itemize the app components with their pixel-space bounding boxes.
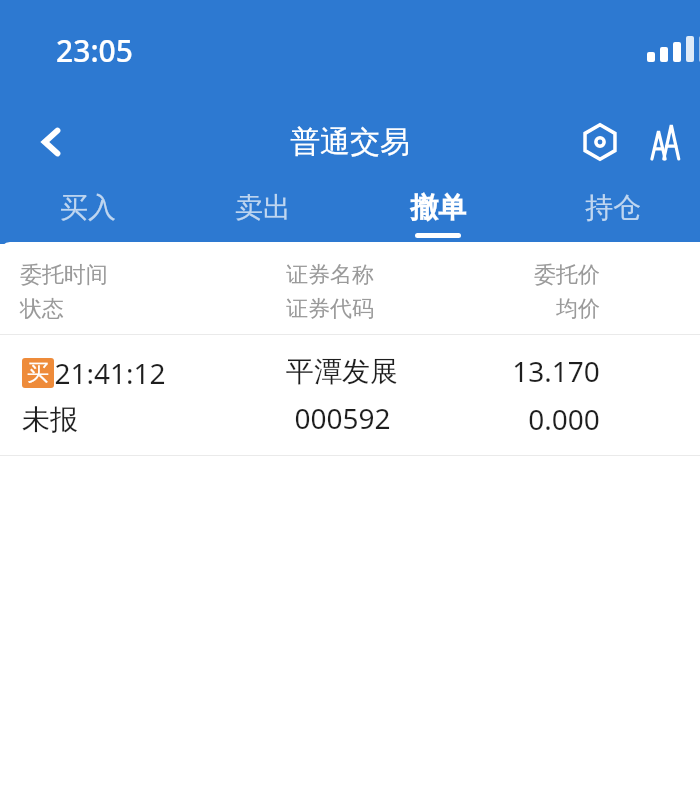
button[interactable]: Back	[18, 108, 86, 176]
staticText: 21:41:12	[54, 354, 166, 392]
staticText: 状态	[20, 295, 64, 323]
staticText: 委托价	[534, 261, 600, 289]
button[interactable]: 撤单	[350, 188, 525, 238]
button[interactable]: 买	[0, 335, 700, 455]
staticText: 000592	[294, 399, 391, 437]
button[interactable]: Font size	[636, 112, 696, 172]
button[interactable]: Settings	[572, 114, 628, 170]
staticText: 买入	[60, 190, 116, 225]
staticText: 均价	[556, 295, 600, 323]
staticText: 持仓	[585, 190, 641, 225]
staticText: 未报	[22, 402, 78, 437]
staticText: 买	[27, 359, 49, 387]
button[interactable]: 持仓	[525, 188, 700, 233]
staticText: 普通交易	[290, 123, 410, 161]
staticText: 0.000	[528, 400, 600, 438]
button[interactable]: 卖出	[175, 188, 350, 233]
staticText: 13.170	[512, 352, 600, 390]
staticText: 证券名称	[286, 261, 374, 289]
staticText: 委托时间	[20, 261, 108, 289]
staticText: 证券代码	[286, 295, 374, 323]
staticText: 卖出	[235, 190, 291, 225]
button[interactable]: 买入	[0, 188, 175, 233]
staticText: 23:05	[56, 30, 133, 71]
staticText: 撤单	[410, 190, 466, 225]
staticText: 平潭发展	[286, 354, 398, 389]
